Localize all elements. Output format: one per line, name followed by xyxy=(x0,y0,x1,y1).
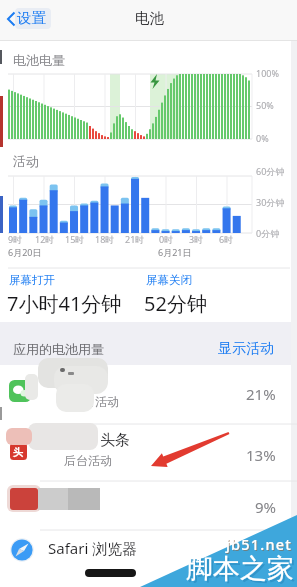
staticText: 脚本之家 xyxy=(186,552,294,586)
staticText: 0分钟 xyxy=(256,227,280,239)
staticText: 13% xyxy=(246,445,276,465)
staticText: Safari 浏览器 xyxy=(48,538,138,558)
staticText: 30分钟 xyxy=(256,196,285,208)
staticText: 屏幕关闭 xyxy=(146,273,192,287)
staticText: 电池 xyxy=(135,9,164,27)
staticText: 屏幕打开 xyxy=(9,273,55,287)
staticText: 头 xyxy=(13,446,23,459)
staticText: 50% xyxy=(256,99,274,111)
staticText: 3时 xyxy=(189,233,204,245)
staticText: 7小时41分钟 xyxy=(7,290,122,317)
staticText: jb51.net xyxy=(226,534,293,554)
staticText: 0时 xyxy=(159,233,174,245)
staticText: 9时 xyxy=(8,233,23,245)
staticText: 18时 xyxy=(95,233,115,245)
staticText: 60分钟 xyxy=(256,165,285,177)
staticText: 后台活动 xyxy=(71,394,119,409)
button[interactable] xyxy=(0,481,297,530)
staticText: 15时 xyxy=(65,233,85,245)
staticText: 12时 xyxy=(35,233,55,245)
staticText: 后台活动 xyxy=(64,453,112,468)
staticText: jb51.net xyxy=(227,535,294,555)
staticText: 显示活动 xyxy=(218,340,274,358)
staticText: 脚本之家 xyxy=(188,554,296,587)
staticText: 6月21日 xyxy=(158,246,192,258)
staticText: 电池电量 xyxy=(13,52,65,68)
staticText: 活动 xyxy=(13,153,39,169)
staticText: 0% xyxy=(256,132,269,144)
button[interactable]: 显示活动 xyxy=(214,335,284,359)
staticText: 6时 xyxy=(219,233,234,245)
staticText: 6月20日 xyxy=(8,246,42,258)
button[interactable] xyxy=(0,530,297,587)
button[interactable] xyxy=(0,365,297,424)
staticText: 100% xyxy=(256,67,279,79)
button[interactable] xyxy=(0,424,297,481)
staticText: 头条 xyxy=(100,431,130,450)
staticText: 设置 xyxy=(17,9,46,27)
staticText: 52分钟 xyxy=(144,290,207,317)
staticText: 应用的电池用量 xyxy=(13,341,104,357)
staticText: 21时 xyxy=(125,233,145,245)
staticText: 21% xyxy=(246,384,276,404)
staticText: 9% xyxy=(255,497,277,517)
button[interactable] xyxy=(2,5,62,33)
